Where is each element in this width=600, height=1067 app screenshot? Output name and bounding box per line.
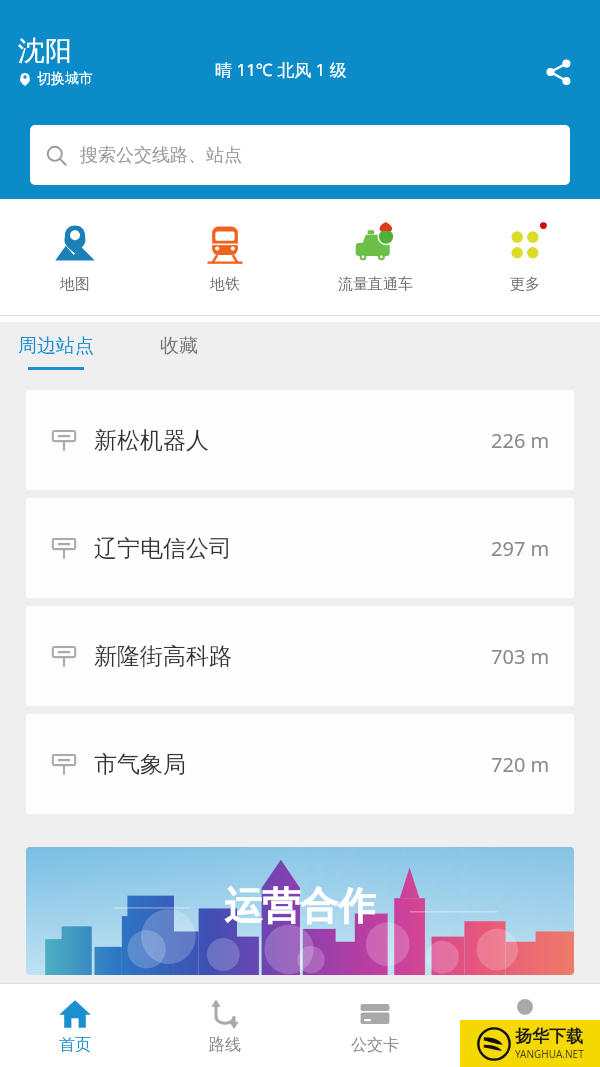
- button[interactable]: 更多: [450, 199, 600, 315]
- button[interactable]: Share: [534, 48, 582, 96]
- staticText: 720 m: [491, 751, 550, 778]
- staticText: 搜索公交线路、站点: [80, 144, 242, 167]
- staticText: 沈阳: [18, 34, 72, 68]
- staticText: 晴 11℃ 北风 1 级: [215, 58, 347, 81]
- button[interactable]: 新隆街高科路: [26, 606, 574, 706]
- staticText: 新隆街高科路: [94, 642, 232, 671]
- button[interactable]: 辽宁电信公司: [26, 498, 574, 598]
- staticText: 辽宁电信公司: [94, 534, 232, 563]
- staticText: 扬华下载: [515, 1026, 583, 1047]
- staticText: YANGHUA.NET: [515, 1047, 584, 1061]
- staticText: 地铁: [210, 275, 240, 294]
- button[interactable]: 地图: [0, 199, 150, 315]
- button[interactable]: 新松机器人: [26, 390, 574, 490]
- button[interactable]: 运营合作: [26, 847, 574, 975]
- button[interactable]: 搜索公交线路、站点: [30, 125, 570, 185]
- staticText: 运营合作: [224, 882, 376, 930]
- button[interactable]: 公交卡: [300, 983, 450, 1067]
- staticText: 新松机器人: [94, 426, 209, 455]
- staticText: 地图: [60, 275, 90, 294]
- staticText: 首页: [59, 1035, 91, 1055]
- staticText: 流量直通车: [338, 275, 413, 294]
- button[interactable]: 沈阳: [18, 34, 93, 88]
- staticText: 收藏: [160, 334, 198, 358]
- staticText: 市气象局: [94, 750, 186, 779]
- button[interactable]: 我的: [450, 983, 600, 1067]
- button[interactable]: 市气象局: [26, 714, 574, 814]
- staticText: 路线: [209, 1035, 241, 1055]
- staticText: 226 m: [491, 427, 550, 454]
- staticText: 我的: [509, 1035, 541, 1055]
- button[interactable]: 首页: [0, 983, 150, 1067]
- button[interactable]: 地铁: [150, 199, 300, 315]
- staticText: 297 m: [491, 535, 550, 562]
- button[interactable]: 路线: [150, 983, 300, 1067]
- button[interactable]: 周边站点: [18, 334, 94, 370]
- staticText: 公交卡: [351, 1035, 399, 1055]
- staticText: 周边站点: [18, 334, 94, 358]
- staticText: 更多: [510, 275, 540, 294]
- staticText: 切换城市: [37, 70, 93, 88]
- button[interactable]: 流量直通车: [300, 199, 450, 315]
- button[interactable]: 收藏: [160, 334, 198, 358]
- staticText: 703 m: [491, 643, 550, 670]
